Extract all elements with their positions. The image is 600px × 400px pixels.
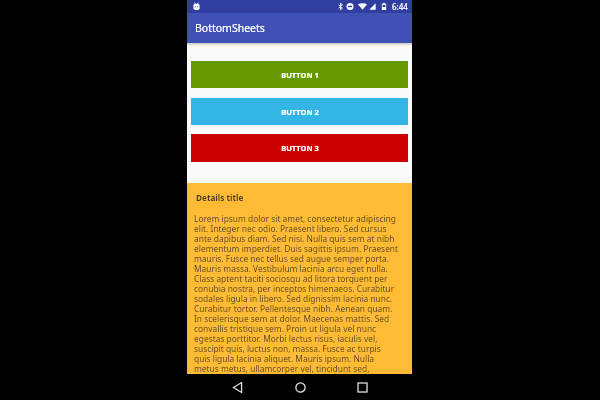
staticText: Lorem ipsum dolor sit amet, consectetur … [194,213,399,374]
button[interactable]: Home [287,374,313,400]
staticText: 6:44 [392,1,408,12]
button[interactable]: Back [224,374,250,400]
staticText: Details title [196,192,244,203]
staticText: BottomSheets [195,21,265,35]
button[interactable]: Details title [187,183,412,374]
staticText: BUTTON 1 [281,70,319,80]
button[interactable]: BUTTON 3 [191,134,408,162]
staticText: BUTTON 2 [281,107,319,117]
button[interactable]: BUTTON 1 [191,61,408,88]
button[interactable]: Recents [349,374,375,400]
button[interactable]: BUTTON 2 [191,98,408,125]
staticText: BUTTON 3 [281,143,319,153]
